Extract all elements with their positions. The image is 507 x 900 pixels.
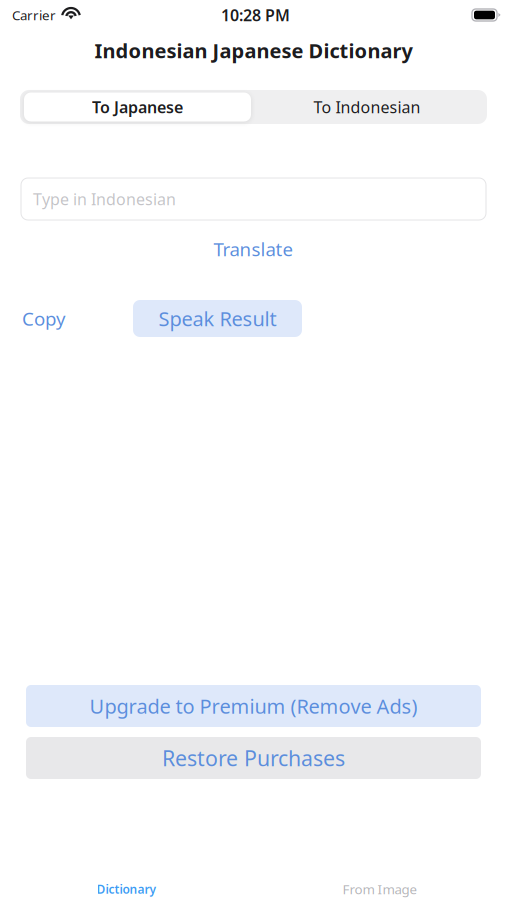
staticText: Speak Result [158,305,276,332]
staticText: Type in Indonesian [33,188,176,210]
button[interactable]: Restore Purchases [26,737,481,779]
staticText: Translate [213,237,293,261]
button[interactable]: Copy [22,300,66,337]
staticText: Carrier [12,6,56,24]
button[interactable]: Speak Result [133,300,302,337]
staticText: To Japanese [92,96,183,118]
staticText: Copy [22,306,66,331]
staticText: Indonesian Japanese Dictionary [94,37,412,64]
staticText: From Image [342,880,417,898]
staticText: Upgrade to Premium (Remove Ads) [89,693,417,719]
staticText: 10:28 PM [221,4,290,26]
button[interactable]: To Indonesian [251,92,483,121]
staticText: To Indonesian [313,96,420,118]
button[interactable]: To Japanese [24,92,251,121]
button[interactable]: Translate [193,238,313,260]
staticText: Dictionary [96,881,156,897]
button[interactable]: Upgrade to Premium (Remove Ads) [26,685,481,727]
button[interactable]: Dictionary [0,878,253,900]
button[interactable]: From Image [253,878,507,900]
staticText: Restore Purchases [162,744,345,772]
